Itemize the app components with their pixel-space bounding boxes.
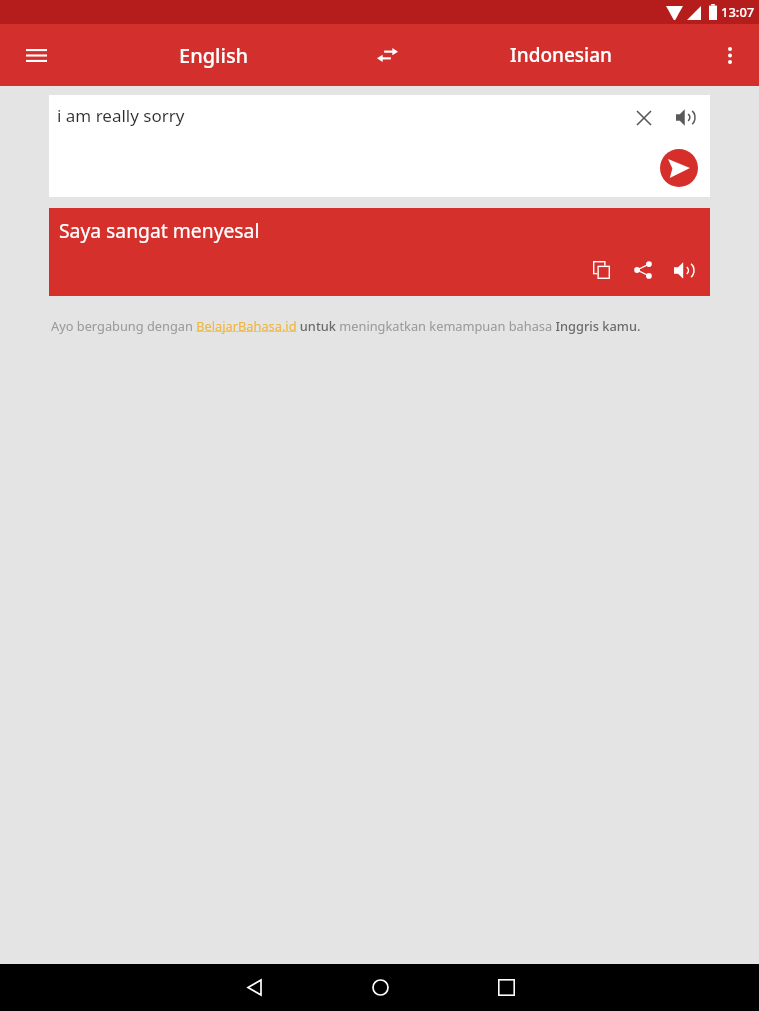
staticText: 13:07 — [721, 3, 755, 21]
button[interactable]: Swap languages — [359, 24, 415, 86]
button[interactable]: Home — [338, 964, 422, 1011]
staticText: i am really sorry — [57, 104, 185, 127]
button[interactable]: Listen translation — [662, 248, 706, 292]
button[interactable]: English — [130, 24, 298, 86]
staticText: Saya sangat menyesal — [59, 217, 260, 243]
button[interactable]: Clear — [622, 96, 666, 140]
button[interactable]: Recent apps — [464, 964, 548, 1011]
button[interactable]: Menu — [8, 27, 64, 83]
button[interactable]: Translate — [660, 149, 698, 187]
staticText: Indonesian — [510, 42, 612, 68]
button[interactable]: Copy — [579, 248, 623, 292]
button[interactable]: More options — [702, 27, 758, 83]
staticText: English — [179, 42, 249, 69]
button[interactable]: Listen — [663, 95, 707, 139]
button[interactable]: Indonesian — [471, 24, 651, 86]
button[interactable]: Share — [621, 248, 665, 292]
button[interactable]: Back — [212, 964, 296, 1011]
staticText: Ayo bergabung dengan BelajarBahasa.id un… — [51, 317, 641, 334]
